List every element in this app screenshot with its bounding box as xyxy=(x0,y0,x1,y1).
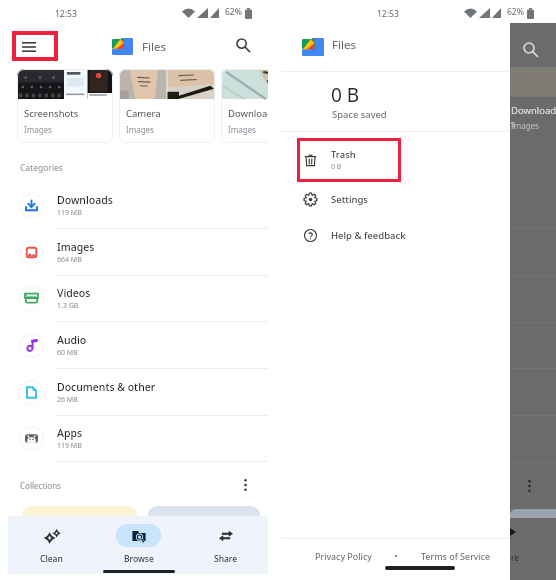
button[interactable]: Trash xyxy=(281,138,510,181)
staticText: Help & feedback xyxy=(331,229,406,242)
staticText: Downloads xyxy=(57,193,113,207)
staticText: 60 MB xyxy=(57,348,78,358)
staticText: 0 B xyxy=(331,82,360,108)
button[interactable]: Privacy Policy xyxy=(315,550,372,562)
staticText: 119 MB xyxy=(57,208,82,218)
staticText: Downloads xyxy=(228,107,268,120)
button[interactable]: Clean xyxy=(8,516,95,574)
staticText: Collections xyxy=(20,480,61,491)
button[interactable]: Help & feedback xyxy=(281,217,510,253)
staticText: Files xyxy=(332,37,356,53)
staticText: 664 MB xyxy=(57,255,82,265)
button[interactable]: Camera xyxy=(119,69,215,143)
staticText: Clean xyxy=(40,553,63,565)
button[interactable]: Documents & other xyxy=(0,369,268,416)
staticText: Space saved xyxy=(332,108,387,121)
button[interactable]: Browse xyxy=(95,516,182,574)
staticText: Images xyxy=(57,240,95,254)
button[interactable]: Terms of Service xyxy=(421,550,491,562)
button[interactable]: Screenshots xyxy=(17,69,113,143)
staticText: 0 B xyxy=(331,162,342,172)
button[interactable]: Share xyxy=(182,516,268,574)
staticText: re xyxy=(511,552,520,564)
staticText: Settings xyxy=(331,193,368,206)
staticText: Videos xyxy=(57,286,91,300)
staticText: 119 MB xyxy=(57,441,82,451)
staticText: Images xyxy=(228,124,256,135)
button[interactable]: More options xyxy=(236,476,254,494)
staticText: Share xyxy=(214,553,238,565)
button[interactable]: Videos xyxy=(0,275,268,322)
staticText: Images xyxy=(24,124,52,135)
staticText: 12:53 xyxy=(55,8,77,20)
button[interactable]: Apps xyxy=(0,415,268,462)
staticText: Documents & other xyxy=(57,380,156,394)
staticText: 62% xyxy=(225,6,242,18)
button[interactable]: Search xyxy=(231,33,255,57)
staticText: Images xyxy=(511,120,539,131)
staticText: 1.3 GB xyxy=(57,301,79,311)
button[interactable]: Downloads xyxy=(221,69,268,143)
staticText: Apps xyxy=(57,426,83,440)
button[interactable]: Downloads xyxy=(0,182,268,229)
staticText: Downloads xyxy=(511,104,556,130)
staticText: Camera xyxy=(126,107,161,120)
staticText: Trash xyxy=(331,148,356,161)
button[interactable]: Images xyxy=(0,229,268,276)
staticText: Files xyxy=(142,39,166,55)
staticText: Screenshots xyxy=(24,107,79,120)
button[interactable] xyxy=(148,506,260,546)
button[interactable]: Audio xyxy=(0,322,268,369)
button[interactable]: Open navigation drawer xyxy=(12,30,58,60)
button[interactable] xyxy=(22,506,137,546)
staticText: 62% xyxy=(507,6,524,18)
staticText: Images xyxy=(126,124,154,135)
button[interactable]: Settings xyxy=(281,181,510,217)
staticText: 26 MB xyxy=(57,395,78,405)
staticText: Audio xyxy=(57,333,87,347)
staticText: Browse xyxy=(124,553,154,565)
staticText: Categories xyxy=(20,162,63,174)
staticText: 12:53 xyxy=(377,8,399,20)
